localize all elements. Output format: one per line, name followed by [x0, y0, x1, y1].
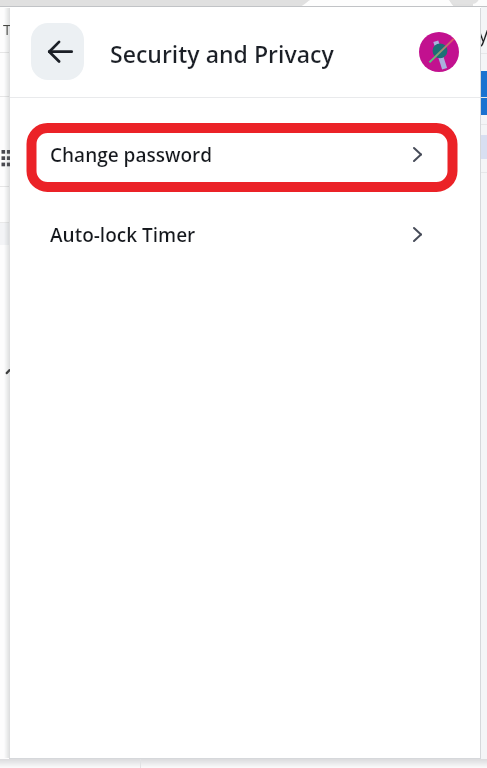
staticText: T — [3, 19, 12, 39]
staticText: Security and Privacy — [110, 38, 334, 69]
staticText: Auto-lock Timer — [50, 222, 196, 248]
staticText: Change password — [50, 142, 213, 168]
staticText: y — [478, 20, 487, 49]
button[interactable]: Change password — [10, 122, 480, 187]
button[interactable]: Account — [419, 32, 459, 72]
button[interactable]: Auto-lock Timer — [10, 202, 480, 267]
button[interactable]: Back — [31, 23, 84, 80]
